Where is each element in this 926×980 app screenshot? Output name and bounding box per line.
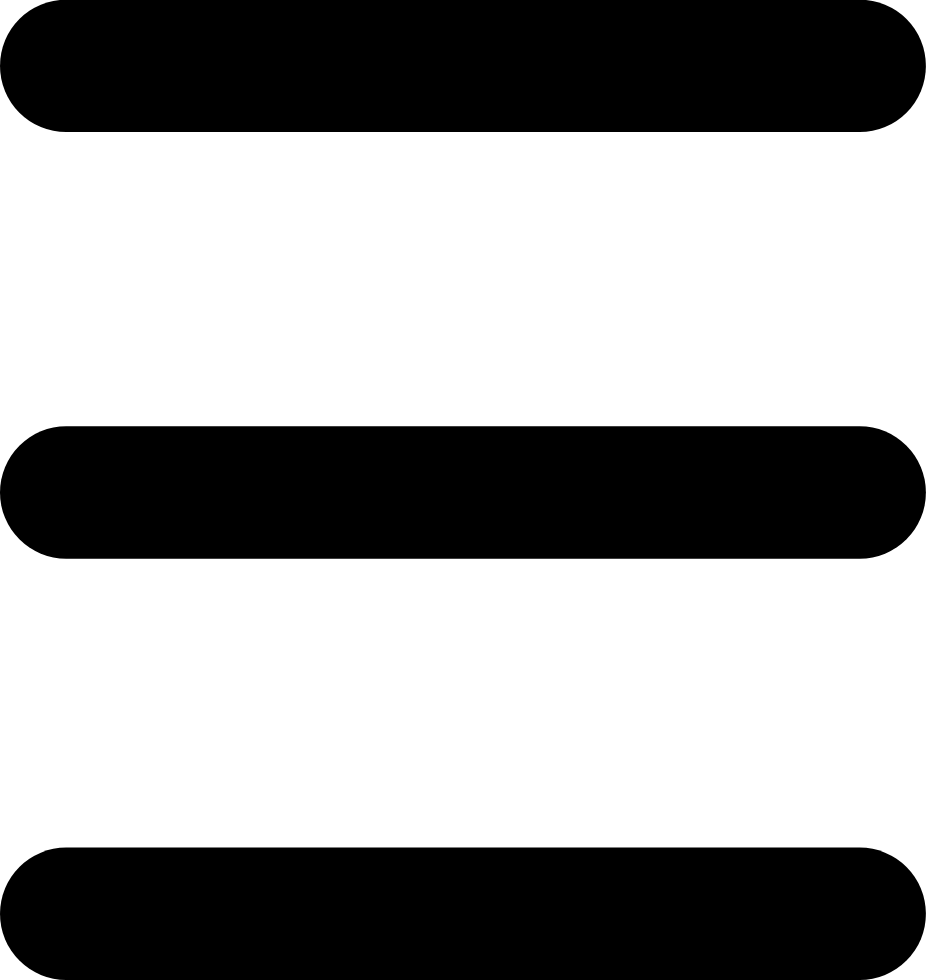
button[interactable]: Open navigation menu (0, 0, 926, 980)
